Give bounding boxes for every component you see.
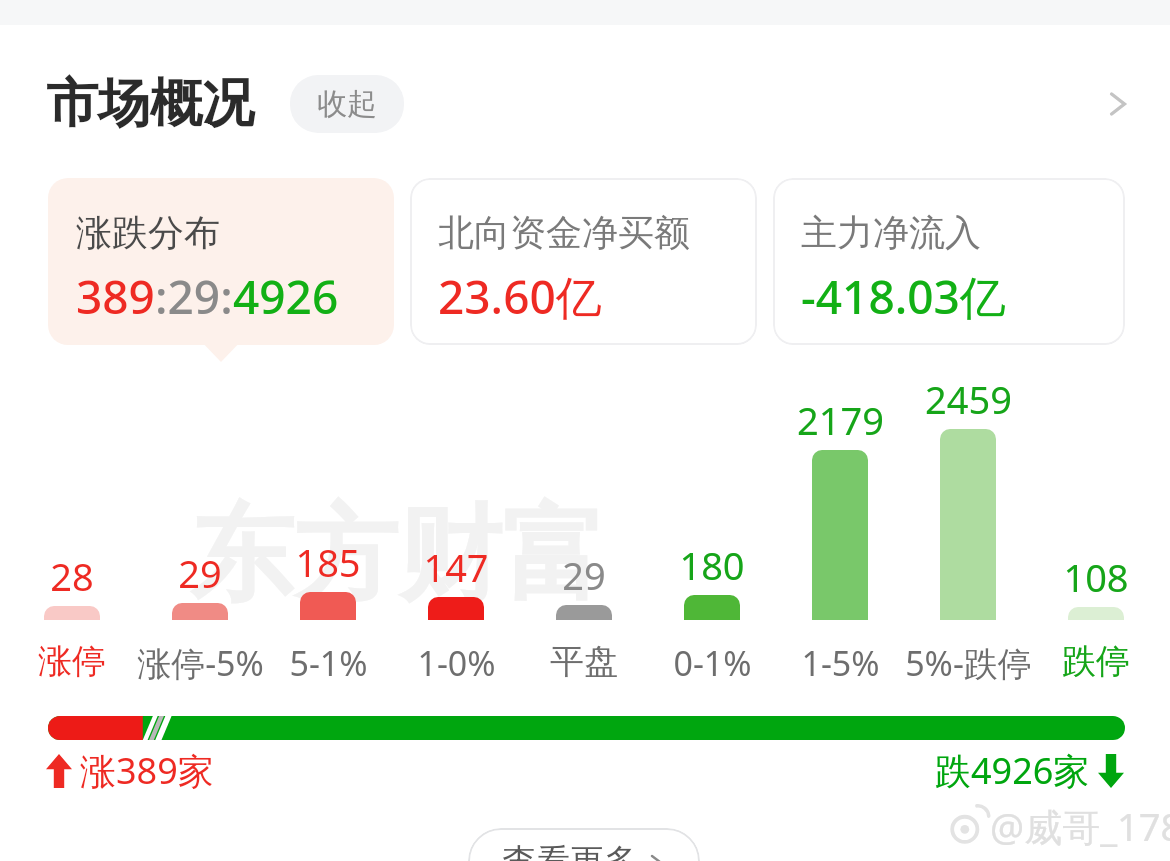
button[interactable]: 北向资金净买额: [410, 178, 757, 345]
staticText: 主力净流入: [801, 210, 981, 255]
staticText: 东方财富: [190, 490, 606, 621]
button[interactable]: 收起: [290, 75, 404, 133]
staticText: 5%-跌停: [905, 640, 1032, 686]
staticText: 0-1%: [673, 640, 752, 686]
staticText: 收起: [317, 85, 377, 123]
staticText: 23.60亿: [438, 265, 602, 328]
staticText: 市场概况: [46, 71, 254, 137]
button[interactable]: [684, 595, 740, 620]
button[interactable]: 涨389家: [46, 746, 214, 795]
staticText: 5-1%: [289, 640, 368, 686]
staticText: 平盘: [550, 640, 618, 683]
staticText: 北向资金净买额: [438, 210, 690, 255]
staticText: 跌4926家: [935, 746, 1090, 795]
button[interactable]: [812, 450, 868, 620]
staticText: 4926: [233, 265, 339, 328]
staticText: 跌停: [1062, 640, 1130, 683]
staticText: 涨跌分布: [76, 210, 220, 255]
staticText: 涨停: [38, 640, 106, 683]
button[interactable]: 查看更多: [468, 828, 700, 861]
button[interactable]: [44, 606, 100, 620]
button[interactable]: More: [1082, 68, 1154, 140]
staticText: -418.03亿: [801, 265, 1006, 328]
button[interactable]: [1068, 607, 1124, 620]
staticText: 389: [76, 265, 155, 328]
button[interactable]: 跌4926家: [935, 746, 1124, 795]
staticText: 2179: [797, 394, 884, 446]
staticText: 108: [1063, 551, 1129, 603]
button[interactable]: 涨跌分布: [48, 178, 394, 345]
staticText: 29: [562, 549, 606, 601]
button[interactable]: [172, 603, 228, 620]
staticText: @威哥_178: [990, 800, 1170, 852]
staticText: 涨389家: [80, 746, 214, 795]
staticText: 查看更多: [502, 840, 638, 861]
staticText: 180: [679, 539, 745, 591]
staticText: 28: [50, 550, 94, 602]
staticText: 涨停-5%: [137, 640, 264, 686]
staticText: 2459: [925, 373, 1012, 425]
staticText: 1-0%: [417, 640, 496, 686]
button[interactable]: [556, 605, 612, 620]
staticText: :29:: [155, 265, 233, 328]
button[interactable]: [428, 597, 484, 620]
button[interactable]: [300, 592, 356, 620]
staticText: 1-5%: [801, 640, 880, 686]
button[interactable]: [48, 716, 1125, 740]
button[interactable]: 主力净流入: [773, 178, 1125, 345]
staticText: 29: [178, 547, 222, 599]
staticText: 185: [295, 536, 361, 588]
button[interactable]: [940, 429, 996, 620]
staticText: 147: [423, 541, 489, 593]
